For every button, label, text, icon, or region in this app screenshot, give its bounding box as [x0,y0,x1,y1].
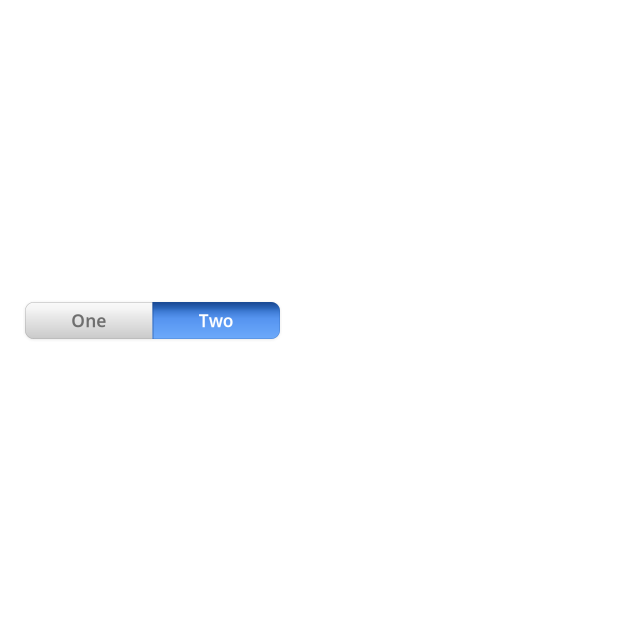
staticText: Two [199,309,234,332]
button[interactable]: Two [152,302,280,339]
button[interactable]: One [25,302,152,339]
staticText: One [71,309,106,332]
